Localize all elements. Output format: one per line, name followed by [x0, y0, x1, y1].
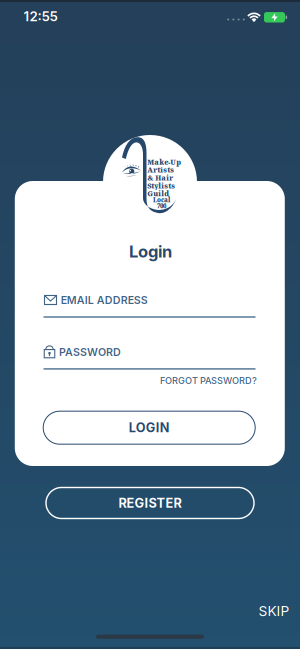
staticText: SKIP [258, 603, 289, 619]
staticText: Local [153, 196, 170, 204]
staticText: Artists [147, 165, 174, 175]
staticText: REGISTER [118, 495, 181, 511]
button[interactable]: REGISTER [46, 487, 254, 518]
button[interactable]: FORGOT PASSWORD? [160, 375, 257, 386]
button[interactable]: EMAIL ADDRESS [43, 292, 255, 318]
staticText: Make-Up [147, 157, 181, 167]
staticText: LOGIN [129, 420, 170, 435]
staticText: Login [129, 241, 172, 261]
button[interactable]: SKIP [258, 603, 289, 619]
staticText: 12:55 [23, 8, 57, 24]
staticText: Stylists [147, 181, 175, 190]
button[interactable]: PASSWORD [43, 344, 255, 370]
staticText: FORGOT PASSWORD? [160, 375, 257, 386]
button[interactable]: LOGIN [43, 411, 255, 444]
staticText: & Hair [147, 173, 173, 183]
staticText: EMAIL ADDRESS [61, 293, 148, 306]
staticText: PASSWORD [59, 345, 121, 358]
staticText: 706 [157, 202, 166, 210]
staticText: Guild [147, 189, 169, 198]
